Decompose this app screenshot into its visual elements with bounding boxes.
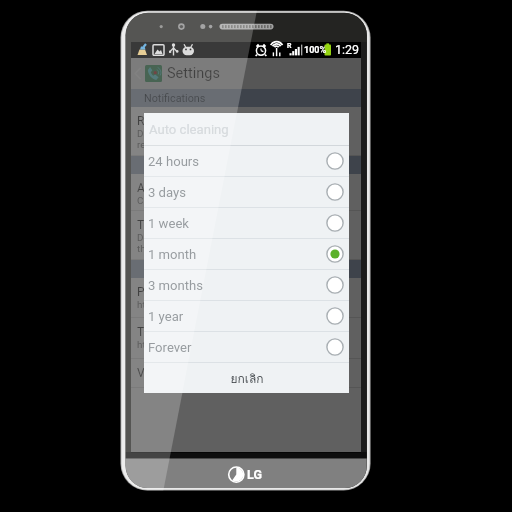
staticText: 24 hours bbox=[148, 154, 200, 169]
button[interactable]: ยกเลิก bbox=[144, 363, 349, 393]
staticText: Notifications bbox=[144, 92, 206, 105]
staticText: Display a notification while bbox=[137, 128, 254, 139]
staticText: recording calls bbox=[137, 139, 201, 150]
button[interactable]: Privacy policy bbox=[131, 278, 361, 317]
staticText: LG bbox=[247, 467, 262, 482]
staticText: Settings bbox=[167, 65, 220, 82]
button[interactable]: 1 year bbox=[144, 301, 349, 331]
button[interactable]: Version bbox=[131, 359, 361, 387]
staticText: Auto cleaning bbox=[149, 122, 229, 137]
staticText: 3 days bbox=[148, 185, 186, 200]
staticText: Version bbox=[137, 366, 178, 380]
staticText: than 1 month bbox=[137, 243, 195, 254]
staticText: Forever bbox=[148, 340, 192, 355]
staticText: 1 year bbox=[148, 309, 184, 324]
button[interactable]: Terms of use bbox=[131, 318, 361, 358]
staticText: Recording notification bbox=[137, 114, 254, 128]
staticText: Auto cleaning bbox=[137, 181, 211, 195]
staticText: Terms of use bbox=[137, 325, 207, 339]
staticText: 1:29 bbox=[335, 42, 360, 57]
button[interactable]: 1 month bbox=[144, 239, 349, 269]
button[interactable]: Recording notification bbox=[131, 107, 361, 155]
staticText: 100% bbox=[304, 45, 327, 56]
staticText: 1 week bbox=[148, 216, 189, 231]
staticText: Time to keep bbox=[137, 218, 206, 232]
button[interactable]: Forever bbox=[144, 332, 349, 362]
staticText: Privacy policy bbox=[137, 285, 211, 299]
button[interactable]: Time to keep bbox=[131, 211, 361, 259]
staticText: R bbox=[287, 42, 292, 50]
button[interactable]: Auto cleaning bbox=[131, 174, 361, 210]
staticText: About bbox=[144, 263, 173, 276]
staticText: 1 month bbox=[148, 247, 197, 262]
button[interactable]: Navigate up bbox=[131, 58, 361, 89]
button[interactable]: 24 hours bbox=[144, 146, 349, 176]
staticText: Auto cleaning bbox=[144, 159, 210, 172]
staticText: http://example.com/privacy bbox=[137, 299, 258, 310]
staticText: 3 months bbox=[148, 278, 204, 293]
staticText: Clean up old recordings bbox=[137, 195, 240, 206]
button[interactable]: 3 days bbox=[144, 177, 349, 207]
button[interactable]: 3 months bbox=[144, 270, 349, 300]
staticText: Delete recordings older bbox=[137, 232, 238, 243]
staticText: ยกเลิก bbox=[230, 369, 264, 388]
staticText: http://example.com/terms bbox=[137, 339, 253, 350]
button[interactable]: 1 week bbox=[144, 208, 349, 238]
